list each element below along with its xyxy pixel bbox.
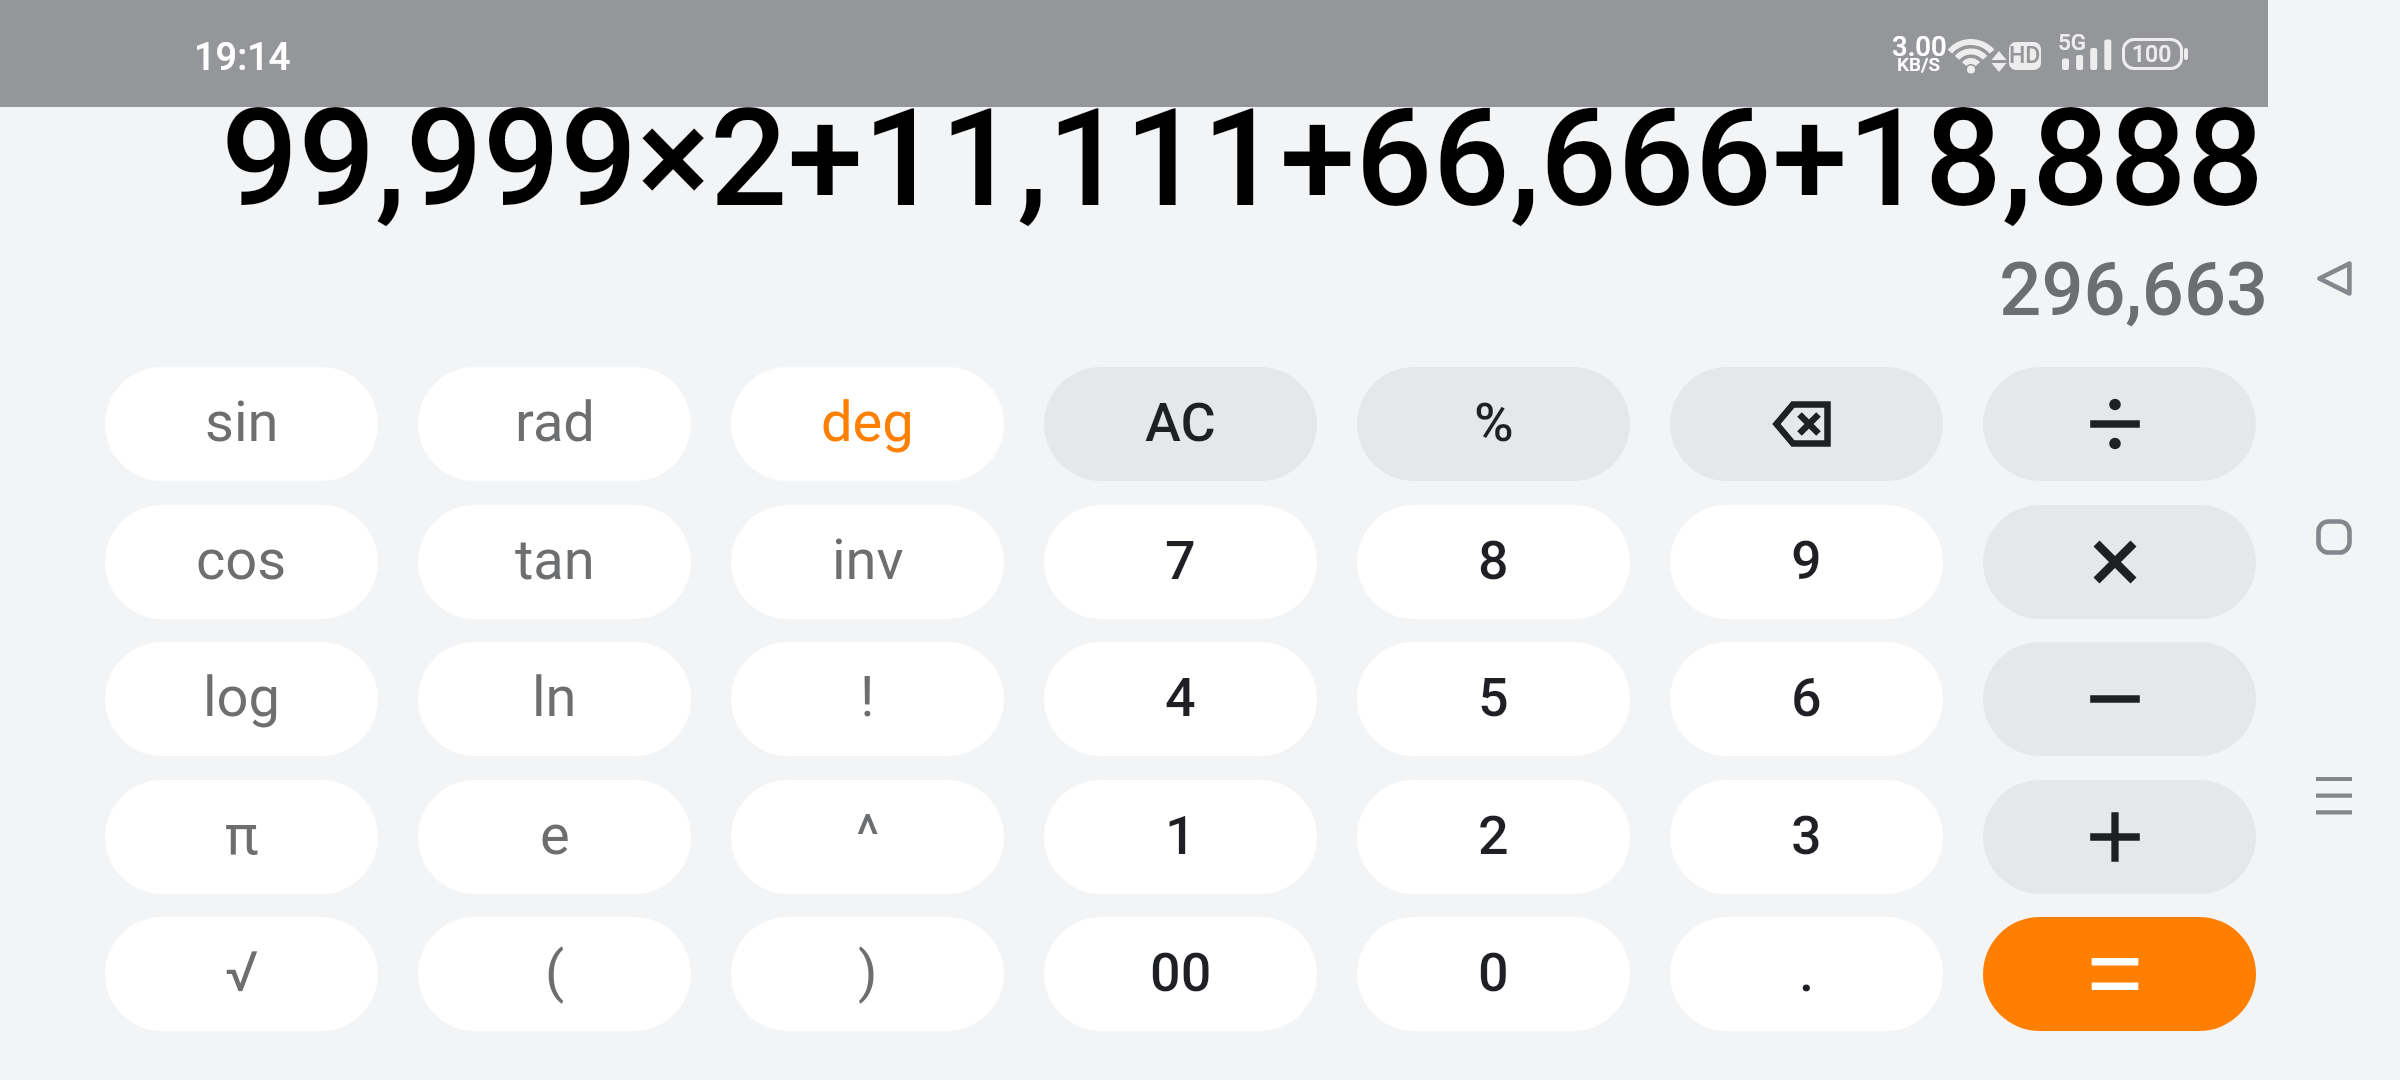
staticText: π — [225, 802, 259, 868]
staticText: 6 — [1791, 666, 1822, 729]
button[interactable]: Equals — [1983, 917, 2256, 1031]
button[interactable]: Backspace — [1670, 367, 1943, 481]
button[interactable]: Multiply — [1983, 505, 2256, 619]
staticText: ( — [545, 939, 565, 1005]
staticText: 0 — [1478, 941, 1509, 1004]
staticText: % — [1474, 391, 1514, 454]
staticText: √ — [225, 939, 259, 1005]
button[interactable]: ! — [731, 642, 1004, 756]
button[interactable]: √ — [105, 917, 378, 1031]
button[interactable]: e — [418, 780, 691, 894]
button[interactable]: inv — [731, 505, 1004, 619]
staticText: . — [1799, 941, 1815, 1004]
staticText: 8 — [1478, 529, 1509, 592]
button[interactable]: 2 — [1357, 780, 1630, 894]
button[interactable]: Back — [2281, 225, 2387, 331]
staticText: 3.00 — [1892, 30, 1947, 62]
staticText: KB/S — [1897, 53, 1940, 75]
button[interactable]: ^ — [731, 780, 1004, 894]
button[interactable]: Divide — [1983, 367, 2256, 481]
staticText: 2 — [1478, 804, 1509, 867]
button[interactable]: 5 — [1357, 642, 1630, 756]
button[interactable]: tan — [418, 505, 691, 619]
staticText: AC — [1145, 391, 1216, 454]
staticText: 9 — [1791, 529, 1822, 592]
staticText: ln — [532, 664, 577, 730]
staticText: cos — [196, 527, 287, 593]
staticText: 4 — [1165, 666, 1196, 729]
staticText: tan — [515, 527, 595, 593]
staticText: 5G — [2058, 29, 2087, 55]
button[interactable]: . — [1670, 917, 1943, 1031]
staticText: 100 — [2132, 41, 2172, 68]
button[interactable]: AC — [1044, 367, 1317, 481]
staticText: 296,663 — [1999, 246, 2268, 333]
button[interactable]: 9 — [1670, 505, 1943, 619]
button[interactable]: Recent apps — [2281, 742, 2387, 848]
button[interactable]: deg — [731, 367, 1004, 481]
button[interactable]: 0 — [1357, 917, 1630, 1031]
staticText: 3 — [1791, 804, 1822, 867]
button[interactable]: rad — [418, 367, 691, 481]
staticText: sin — [205, 389, 279, 455]
staticText: 7 — [1165, 529, 1196, 592]
staticText: inv — [832, 527, 904, 593]
button[interactable]: cos — [105, 505, 378, 619]
staticText: deg — [821, 389, 914, 455]
button[interactable]: ) — [731, 917, 1004, 1031]
staticText: 99,999×2+11,111+66,666+18,888 — [220, 79, 2264, 238]
staticText: rad — [515, 389, 595, 455]
staticText: ) — [858, 939, 878, 1005]
button[interactable]: 00 — [1044, 917, 1317, 1031]
button[interactable]: Plus — [1983, 780, 2256, 894]
button[interactable]: ( — [418, 917, 691, 1031]
button[interactable]: log — [105, 642, 378, 756]
button[interactable]: 3 — [1670, 780, 1943, 894]
button[interactable]: ln — [418, 642, 691, 756]
button[interactable]: Home — [2281, 484, 2387, 590]
staticText: 5 — [1478, 666, 1509, 729]
staticText: 19:14 — [194, 35, 291, 80]
staticText: ! — [860, 664, 875, 730]
button[interactable]: 7 — [1044, 505, 1317, 619]
button[interactable]: 8 — [1357, 505, 1630, 619]
staticText: 00 — [1150, 941, 1212, 1004]
button[interactable]: 4 — [1044, 642, 1317, 756]
staticText: HD — [2009, 42, 2041, 69]
button[interactable]: sin — [105, 367, 378, 481]
button[interactable]: % — [1357, 367, 1630, 481]
button[interactable]: 1 — [1044, 780, 1317, 894]
button[interactable]: π — [105, 780, 378, 894]
button[interactable]: Minus — [1983, 642, 2256, 756]
button[interactable]: 6 — [1670, 642, 1943, 756]
staticText: e — [540, 802, 570, 868]
staticText: log — [203, 664, 280, 730]
staticText: 1 — [1165, 804, 1196, 867]
staticText: ^ — [856, 802, 880, 868]
